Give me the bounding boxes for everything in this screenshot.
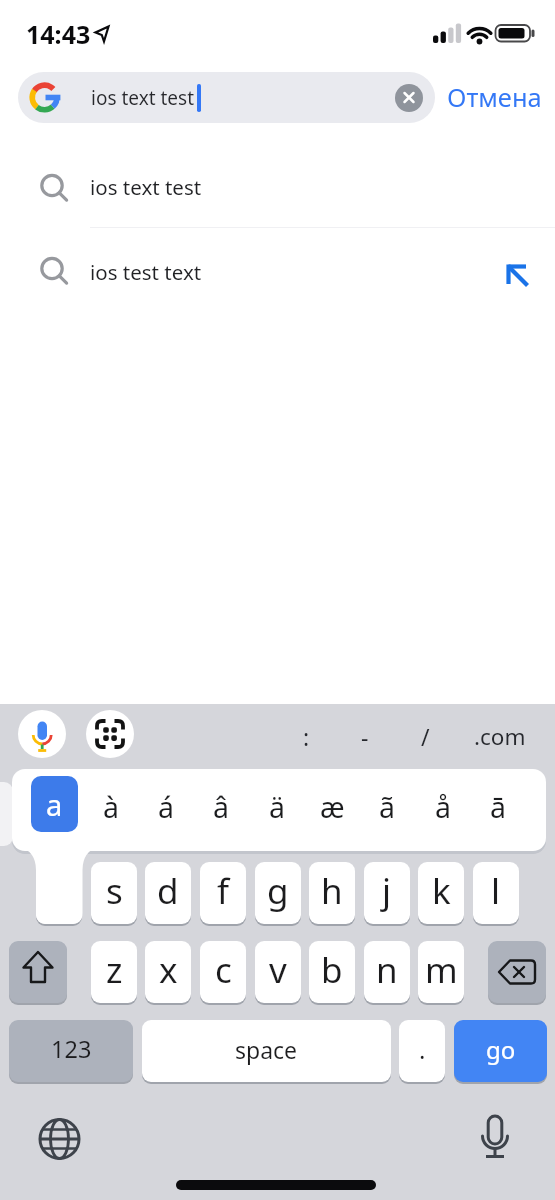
button[interactable] [34,1113,86,1165]
button[interactable]: j [364,862,410,924]
staticText: .com [474,721,526,752]
staticText: å [435,788,451,827]
button[interactable]: x [145,941,191,1003]
button[interactable] [18,72,435,123]
staticText: k [432,867,451,915]
button[interactable]: n [364,941,410,1003]
staticText: s [106,867,123,915]
staticText: / [421,721,430,752]
staticText: ä [269,788,285,827]
staticText: ios text test [91,85,195,111]
button[interactable]: 123 [9,1020,133,1082]
button[interactable]: ä [255,771,299,843]
staticText: ā [490,788,506,827]
button[interactable]: go [454,1020,547,1082]
button[interactable]: g [255,862,301,924]
button[interactable]: â [199,771,243,843]
button[interactable]: - [338,709,392,763]
staticText: ã [379,788,395,827]
staticText: d [157,867,179,915]
staticText: . [419,1033,426,1066]
button[interactable]: á [144,771,188,843]
staticText: à [103,788,119,827]
staticText: z [106,946,123,994]
button[interactable]: c [200,941,246,1003]
button[interactable] [488,941,546,1003]
button[interactable]: å [421,771,465,843]
staticText: j [382,867,392,915]
button[interactable]: space [142,1020,391,1082]
staticText: â [213,788,229,827]
button[interactable]: h [309,862,355,924]
button[interactable]: / [398,709,452,763]
button[interactable]: à [89,771,133,843]
button[interactable]: ā [476,771,520,843]
staticText: a [46,785,63,824]
button[interactable] [36,862,82,924]
button[interactable] [9,941,67,1003]
staticText: space [235,1034,298,1065]
button[interactable]: f [200,862,246,924]
button[interactable]: Отмена [447,72,547,123]
button[interactable]: d [145,862,191,924]
staticText: ios text test [90,173,202,201]
button[interactable]: ã [365,771,409,843]
button[interactable] [395,84,423,112]
button[interactable]: k [418,862,464,924]
button[interactable]: a [31,776,78,832]
button[interactable] [18,710,66,758]
staticText: g [267,867,289,915]
staticText: f [217,867,230,915]
button[interactable]: .com [466,709,534,763]
staticText: x [159,946,178,994]
staticText: Отмена [447,80,542,115]
staticText: b [321,946,343,994]
button[interactable]: : [279,709,333,763]
button[interactable]: s [91,862,137,924]
button[interactable]: b [309,941,355,1003]
staticText: go [486,1033,516,1066]
staticText: n [376,946,398,994]
staticText: h [321,867,343,915]
staticText: ios test text [90,258,202,286]
button[interactable]: ios text test [0,146,555,228]
button[interactable]: m [418,941,464,1003]
button[interactable] [86,710,134,758]
staticText: m [425,946,458,994]
staticText: c [215,946,232,994]
staticText: : [303,721,310,752]
staticText: - [361,721,369,752]
staticText: l [491,867,501,915]
button[interactable]: ios test text [0,230,555,314]
staticText: 14:43 [26,17,91,47]
button[interactable]: v [255,941,301,1003]
button[interactable]: . [399,1020,445,1082]
button[interactable]: æ [310,771,354,843]
staticText: v [269,946,287,994]
button[interactable]: l [473,862,519,924]
staticText: 123 [51,1033,92,1065]
button[interactable]: z [91,941,137,1003]
staticText: æ [320,788,345,827]
staticText: á [158,788,174,827]
button[interactable] [469,1111,521,1163]
